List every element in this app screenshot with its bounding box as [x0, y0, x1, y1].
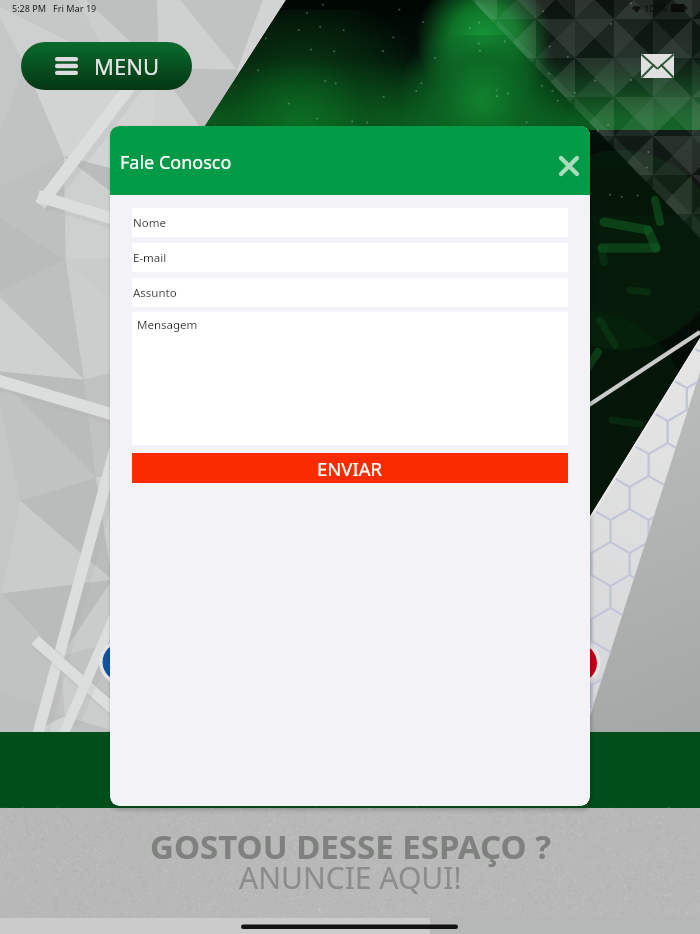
button[interactable]: Assunto: [132, 278, 568, 307]
staticText: ANUNCIE AQUI!: [239, 857, 462, 898]
staticText: 100%: [644, 2, 668, 14]
button[interactable]: ENVIAR: [132, 453, 568, 483]
staticText: Fale Conosco: [120, 150, 232, 175]
staticText: ENVIAR: [317, 456, 383, 481]
staticText: Nome: [133, 215, 166, 231]
button[interactable]: E-mail: [132, 243, 568, 272]
button[interactable]: Nome: [132, 208, 568, 237]
staticText: GOSTOU DESSE ESPAÇO ?: [150, 824, 551, 869]
button[interactable]: MENU: [21, 42, 192, 90]
button[interactable]: GOSTOU DESSE ESPAÇO ?: [0, 824, 700, 894]
staticText: Mensagem: [137, 317, 198, 333]
staticText: MENU: [94, 51, 159, 81]
staticText: Assunto: [133, 285, 177, 301]
staticText: 5:28 PM: [12, 2, 46, 14]
staticText: E-mail: [133, 250, 167, 266]
button[interactable]: Mensagem: [132, 312, 568, 445]
button[interactable]: Email: [634, 47, 680, 85]
button[interactable]: Close: [549, 146, 589, 186]
staticText: Fri Mar 19: [53, 2, 97, 14]
